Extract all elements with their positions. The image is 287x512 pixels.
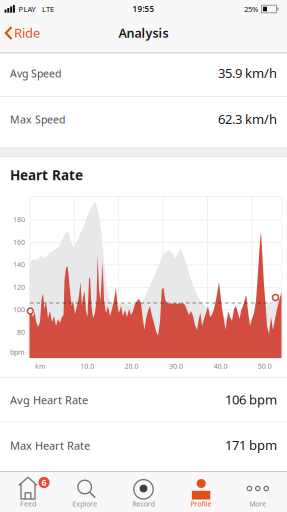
staticText: Heart Rate xyxy=(10,166,83,184)
staticText: More xyxy=(249,499,266,508)
staticText: 171 bpm xyxy=(225,436,277,454)
staticText: LTE xyxy=(42,4,54,14)
staticText: 80 xyxy=(17,327,25,337)
staticText: 180 xyxy=(13,215,25,224)
staticText: 30.0 xyxy=(169,361,183,371)
staticText: Explore xyxy=(72,499,97,508)
staticText: Avg Heart Rate xyxy=(10,392,88,407)
staticText: 50.0 xyxy=(258,361,272,371)
staticText: 10.0 xyxy=(80,361,94,371)
staticText: Avg Speed xyxy=(10,66,61,81)
button[interactable]: Profile xyxy=(176,472,226,510)
staticText: 19:55 xyxy=(132,4,154,14)
staticText: Max Speed xyxy=(10,112,65,127)
staticText: Max Heart Rate xyxy=(10,438,90,453)
staticText: 100 xyxy=(13,305,25,314)
staticText: bpm xyxy=(10,347,25,357)
staticText: Record xyxy=(132,499,154,508)
staticText: Ride xyxy=(14,24,40,42)
button[interactable]: Explore xyxy=(61,472,111,510)
staticText: 140 xyxy=(13,260,25,269)
staticText: 106 bpm xyxy=(225,391,277,408)
staticText: Profile xyxy=(190,499,211,508)
button[interactable]: Ride xyxy=(0,18,46,48)
staticText: 20.0 xyxy=(125,361,139,371)
staticText: 6 xyxy=(41,476,46,488)
staticText: 120 xyxy=(13,282,25,292)
button[interactable]: Record xyxy=(118,472,168,510)
staticText: km xyxy=(35,361,46,371)
staticText: 40.0 xyxy=(213,361,227,371)
staticText: Feed xyxy=(20,499,36,508)
staticText: 35.9 km/h xyxy=(218,64,277,82)
staticText: PLAY xyxy=(18,4,35,14)
staticText: 160 xyxy=(13,237,25,247)
staticText: 62.3 km/h xyxy=(218,110,277,128)
staticText: Analysis xyxy=(118,24,168,41)
staticText: 25% xyxy=(244,4,258,14)
button[interactable]: 6 xyxy=(4,472,54,510)
button[interactable]: More xyxy=(233,472,283,510)
